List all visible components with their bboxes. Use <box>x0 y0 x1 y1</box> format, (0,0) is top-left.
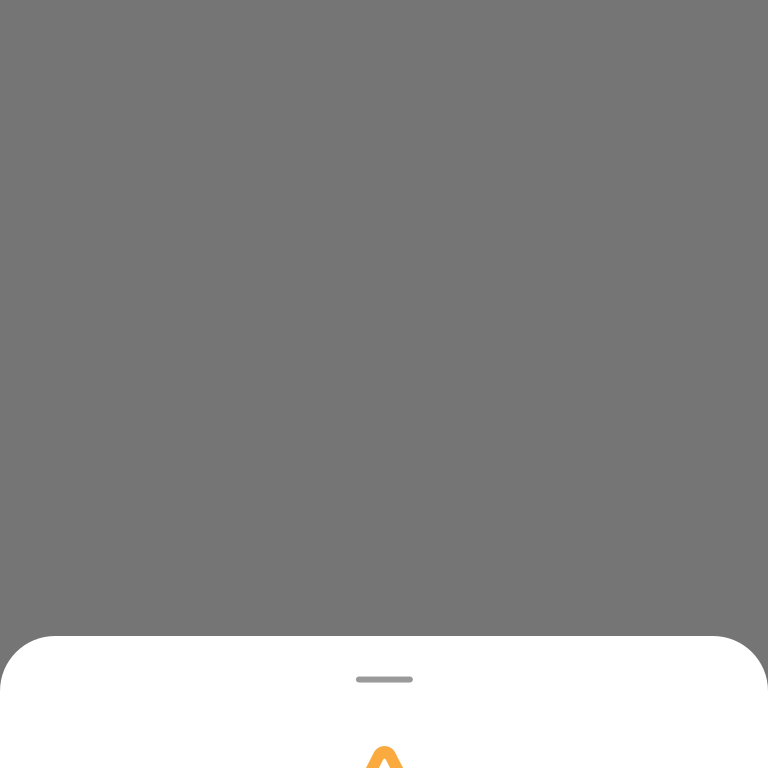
button[interactable]: Drag to resize <box>355 676 412 682</box>
button[interactable]: Dismiss <box>0 0 768 768</box>
